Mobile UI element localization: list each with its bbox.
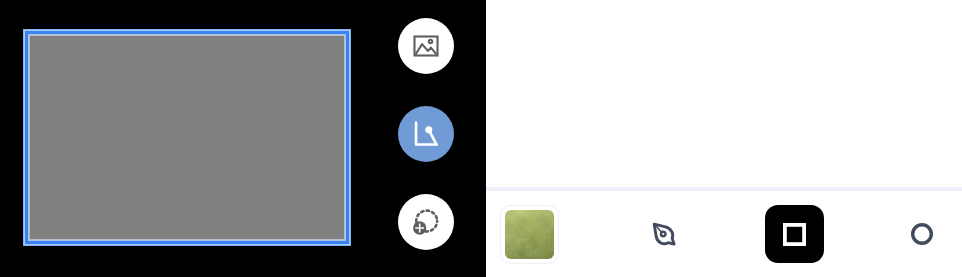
button[interactable]: Photo thumbnail [494, 191, 565, 277]
button[interactable]: Choose image [398, 18, 454, 74]
button[interactable]: Add to selection [398, 194, 454, 250]
button[interactable]: Adjust perspective [398, 106, 454, 162]
button[interactable]: Pen tool [631, 191, 697, 277]
button[interactable]: Stop [759, 191, 829, 277]
button[interactable]: Record [889, 191, 955, 277]
